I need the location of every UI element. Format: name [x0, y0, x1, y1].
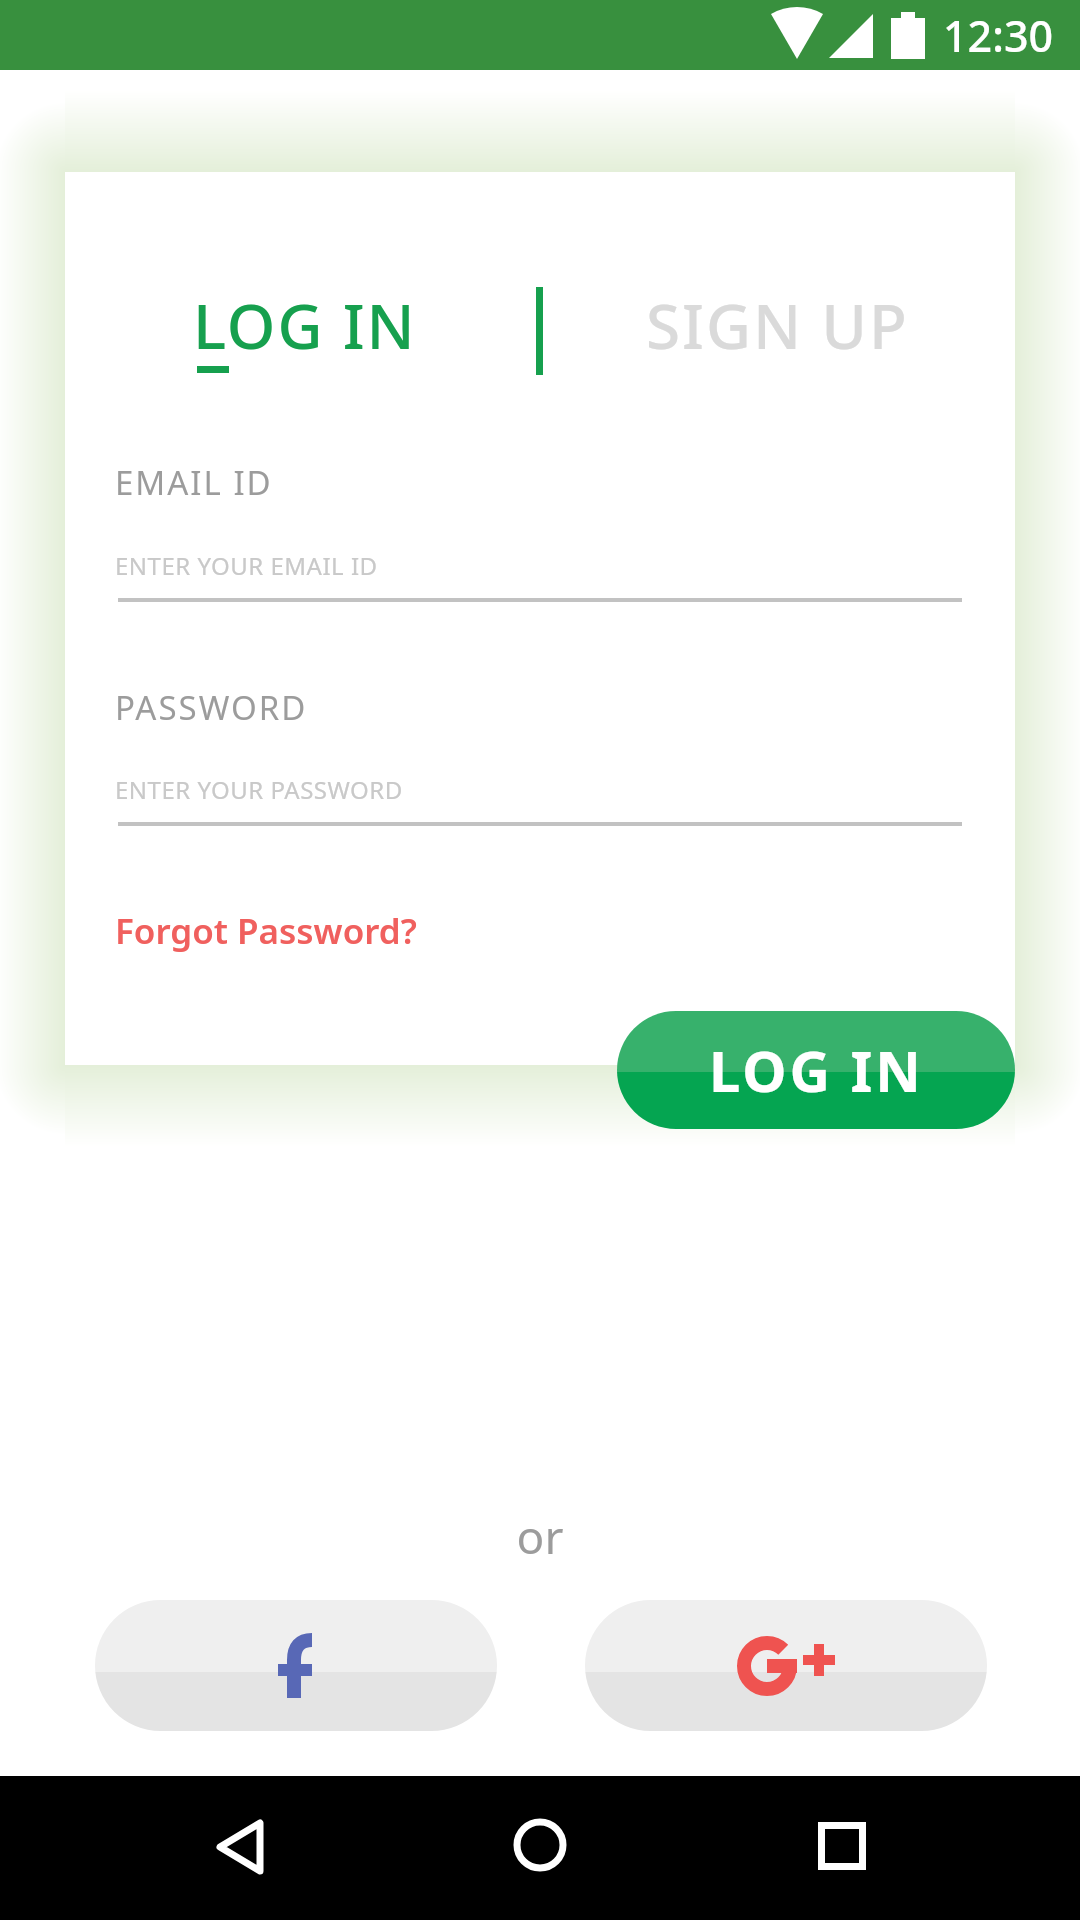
button[interactable]: LOG IN [617, 1011, 1015, 1129]
staticText: ENTER YOUR PASSWORD [115, 773, 403, 806]
staticText: 12:30 [943, 6, 1054, 65]
staticText: LOG IN [709, 1032, 924, 1108]
button[interactable] [95, 1600, 497, 1731]
button[interactable] [585, 1600, 987, 1731]
button[interactable]: SIGN UP [646, 283, 909, 367]
staticText: SIGN UP [646, 283, 909, 367]
button[interactable] [513, 1818, 567, 1872]
staticText: EMAIL ID [115, 460, 273, 505]
staticText: or [0, 1505, 1080, 1568]
staticText: Forgot Password? [115, 907, 417, 955]
staticText: PASSWORD [115, 685, 308, 730]
staticText: LOG IN [193, 283, 417, 367]
button[interactable] [818, 1822, 866, 1870]
button[interactable]: LOG IN [193, 283, 417, 367]
staticText: ENTER YOUR EMAIL ID [115, 549, 378, 582]
button[interactable]: Forgot Password? [115, 907, 417, 955]
button[interactable] [214, 1818, 266, 1876]
